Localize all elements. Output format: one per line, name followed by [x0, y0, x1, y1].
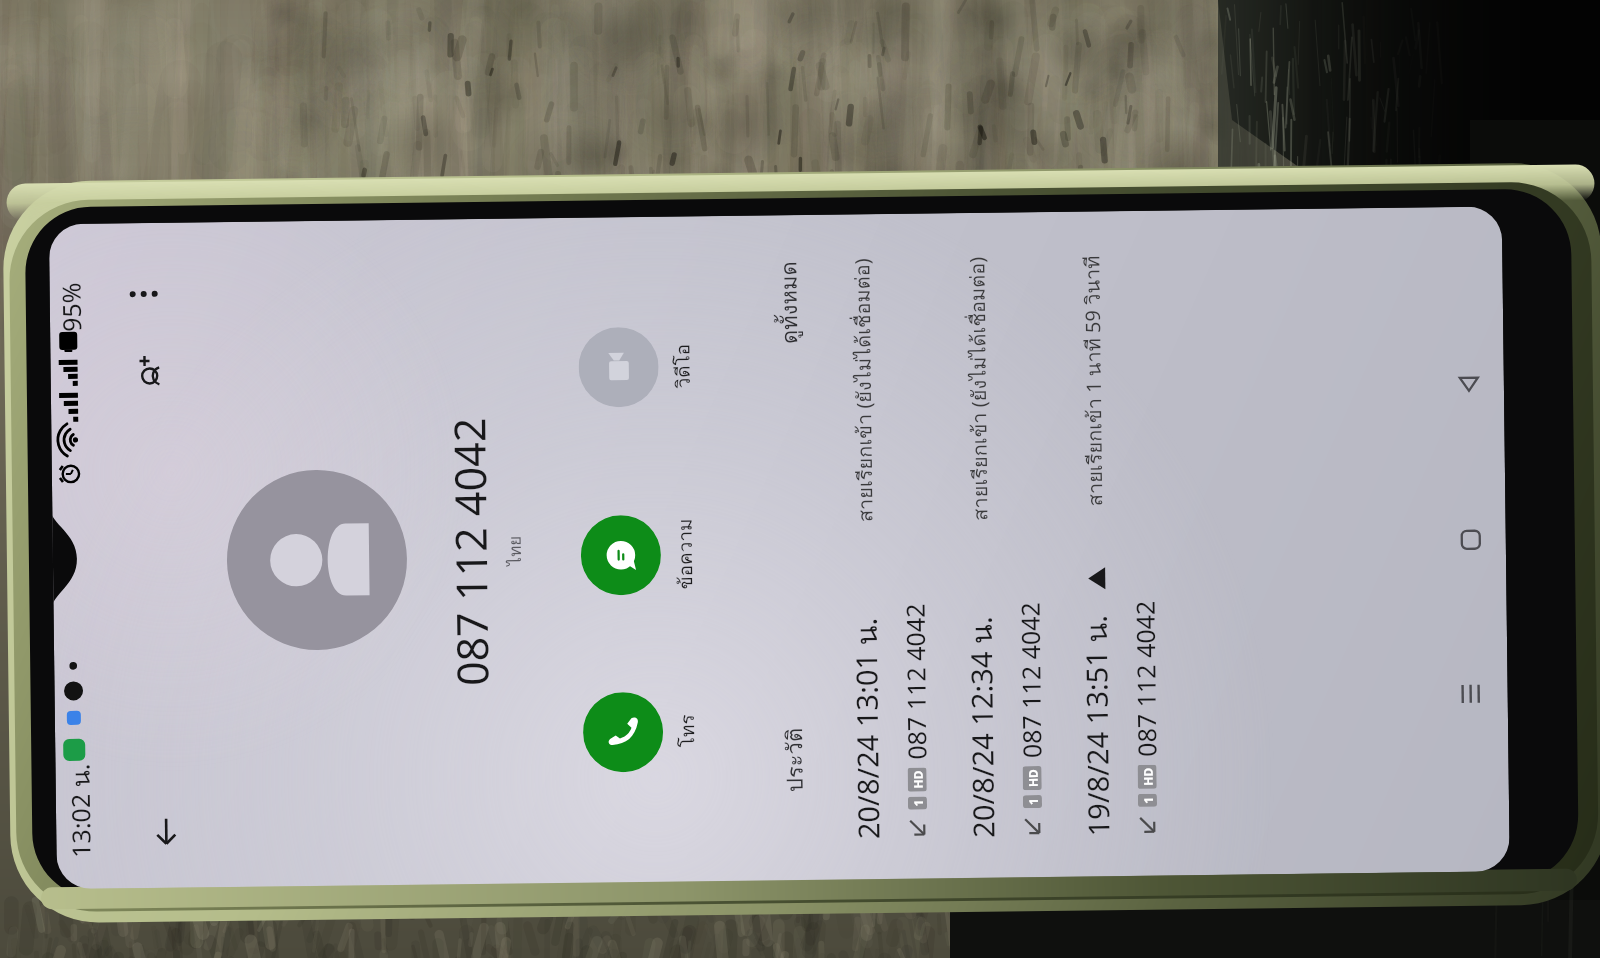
staticText: 087 112 4042 — [897, 602, 933, 760]
staticText: ไทย — [501, 535, 528, 566]
button[interactable]: Add contact — [126, 343, 183, 400]
button[interactable]: วิดีโอ — [578, 306, 698, 428]
button[interactable]: Back — [138, 803, 195, 860]
staticText: โทร — [672, 714, 702, 748]
button[interactable]: 19/8/24 13:51 น. — [1069, 211, 1165, 877]
staticText: 20/8/24 13:01 น. — [844, 617, 892, 839]
staticText: ประวัติ — [777, 727, 813, 792]
button[interactable]: ข้อความ — [580, 494, 701, 616]
button[interactable]: Recents — [1442, 665, 1499, 722]
staticText: HD — [910, 770, 926, 789]
button[interactable]: ประวัติ — [771, 215, 814, 880]
button[interactable]: โทร — [582, 671, 703, 793]
staticText: HD — [1025, 769, 1041, 787]
staticText: 1 — [910, 799, 926, 807]
staticText: 13:02 น. — [60, 763, 102, 858]
staticText: วิดีโอ — [667, 343, 698, 389]
staticText: 1 — [1140, 797, 1156, 804]
button[interactable]: Back — [1440, 355, 1497, 412]
staticText: 1 — [1025, 798, 1041, 805]
staticText: ดูทั้งหมด — [771, 261, 807, 344]
button[interactable]: More options — [115, 266, 172, 322]
button[interactable]: Home — [1442, 511, 1499, 568]
staticText: สายเรียกเข้า (ยังไม่ได้เชื่อมต่อ) — [846, 258, 881, 522]
staticText: 087 112 4042 — [439, 417, 501, 686]
staticText: 087 112 4042 — [1012, 601, 1048, 758]
staticText: HD — [1140, 768, 1156, 786]
staticText: สายเรียกเข้า 1 นาที 59 วินาที — [1076, 255, 1111, 507]
staticText: ข้อความ — [669, 518, 700, 590]
staticText: 19/8/24 13:51 น. — [1074, 614, 1122, 837]
staticText: 95% — [53, 282, 88, 332]
staticText: 087 112 4042 — [1127, 600, 1163, 757]
button[interactable]: 20/8/24 13:01 น. — [839, 213, 935, 879]
staticText: สายเรียกเข้า (ยังไม่ได้เชื่อมต่อ) — [961, 257, 996, 521]
button[interactable]: 20/8/24 12:34 น. — [954, 212, 1050, 878]
staticText: 20/8/24 12:34 น. — [959, 615, 1007, 838]
